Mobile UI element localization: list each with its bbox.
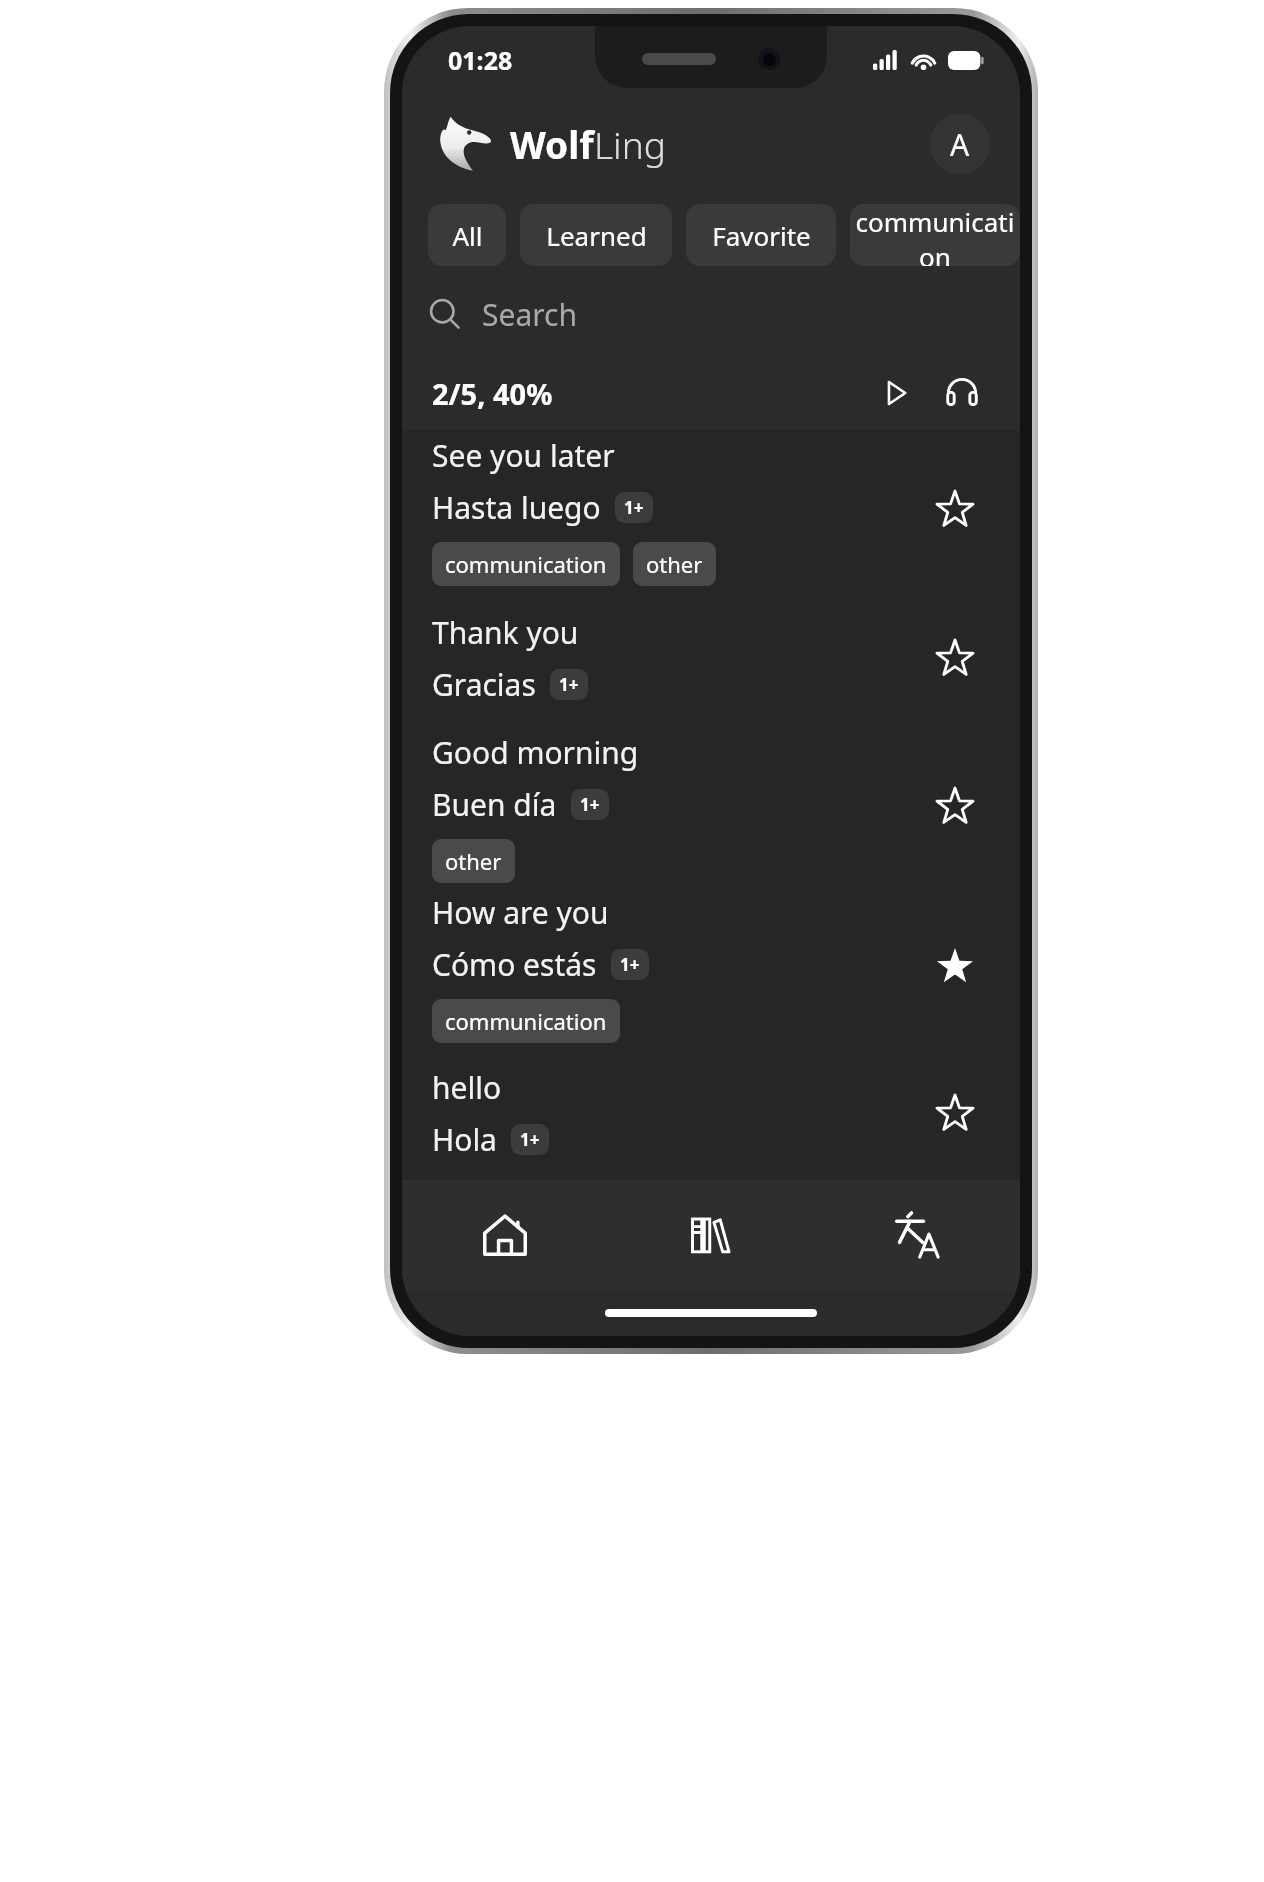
staticText: Hasta luego <box>432 487 601 528</box>
button[interactable]: communication <box>432 542 620 586</box>
staticText: communication <box>445 549 607 579</box>
staticText: other <box>646 549 703 579</box>
button[interactable]: Favorite <box>924 1083 986 1145</box>
staticText: All <box>452 218 483 253</box>
button[interactable]: Thank you <box>402 590 1020 727</box>
staticText: 1+ <box>580 793 600 816</box>
button[interactable]: other <box>432 839 515 883</box>
staticText: 1+ <box>624 496 644 519</box>
staticText: hello <box>432 1067 502 1108</box>
button[interactable]: other <box>633 542 716 586</box>
staticText: 1+ <box>620 953 640 976</box>
button[interactable]: How are you <box>402 887 1020 1047</box>
staticText: communication <box>850 204 1020 266</box>
button[interactable]: Favorite <box>686 204 836 266</box>
button[interactable]: hello <box>402 1047 1020 1180</box>
button[interactable]: All <box>428 204 506 266</box>
button[interactable]: Library <box>608 1180 814 1290</box>
staticText: communication <box>445 1006 607 1036</box>
button[interactable]: communication <box>432 999 620 1043</box>
button[interactable]: Favorite <box>924 776 986 838</box>
staticText: Ling <box>594 119 666 169</box>
staticText: Good morning <box>432 732 639 773</box>
button[interactable]: See you later <box>402 430 1020 590</box>
button[interactable]: Favorite <box>924 479 986 541</box>
staticText: See you later <box>432 435 615 476</box>
staticText: Buen día <box>432 784 557 825</box>
button[interactable]: Favorite <box>924 628 986 690</box>
button[interactable]: Account <box>930 114 990 174</box>
staticText: Learned <box>546 218 647 253</box>
button[interactable]: Listen <box>938 369 986 417</box>
staticText: Search <box>482 294 577 335</box>
button[interactable]: Translate <box>814 1180 1020 1290</box>
button[interactable]: communication <box>850 204 1020 266</box>
button[interactable]: Home <box>402 1180 608 1290</box>
staticText: 1+ <box>559 673 579 696</box>
staticText: A <box>950 124 970 165</box>
staticText: Gracias <box>432 664 536 705</box>
staticText: Cómo estás <box>432 944 597 985</box>
button[interactable]: Good morning <box>402 727 1020 887</box>
button[interactable]: Play <box>872 369 920 417</box>
staticText: Hola <box>432 1119 497 1160</box>
staticText: How are you <box>432 892 609 933</box>
staticText: Thank you <box>432 612 579 653</box>
staticText: 01:28 <box>448 43 513 77</box>
button[interactable]: Search <box>428 272 994 356</box>
button[interactable]: Learned <box>520 204 672 266</box>
staticText: 1+ <box>520 1128 540 1151</box>
staticText: other <box>445 846 502 876</box>
staticText: 2/5, 40% <box>432 374 553 413</box>
staticText: Wolf <box>510 119 594 169</box>
button[interactable]: Unfavorite <box>924 936 986 998</box>
staticText: Favorite <box>712 218 811 253</box>
